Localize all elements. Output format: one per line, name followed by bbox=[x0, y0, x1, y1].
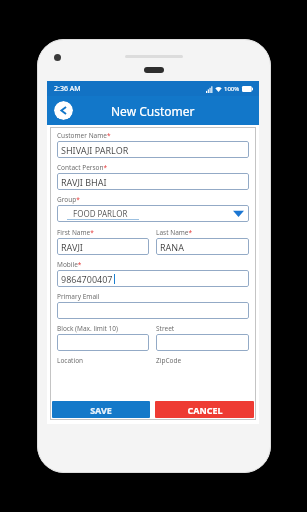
button[interactable]: SHIVAJI PARLOR bbox=[57, 141, 249, 158]
staticText: Street bbox=[156, 324, 175, 333]
staticText: 2:36 AM bbox=[54, 84, 81, 94]
staticText: ZipCode bbox=[156, 356, 182, 365]
button[interactable]: 9864700407 bbox=[57, 270, 249, 287]
staticText: 100% bbox=[224, 85, 240, 93]
staticText: Last Name* bbox=[156, 228, 193, 237]
staticText: FOOD PARLOR bbox=[73, 208, 128, 219]
staticText: CANCEL bbox=[187, 404, 223, 416]
button[interactable]: RAVJI bbox=[57, 238, 149, 255]
staticText: Mobile* bbox=[57, 260, 82, 269]
button[interactable]: FOOD PARLOR bbox=[57, 205, 249, 222]
staticText: RAVJI bbox=[61, 241, 83, 253]
button[interactable]: Back bbox=[54, 101, 73, 120]
button[interactable] bbox=[156, 334, 249, 351]
staticText: SHIVAJI PARLOR bbox=[61, 144, 129, 156]
staticText: Group* bbox=[57, 195, 80, 204]
staticText: Contact Person* bbox=[57, 163, 108, 172]
staticText: New Customer bbox=[111, 103, 195, 119]
staticText: First Name* bbox=[57, 228, 94, 237]
staticText: RANA bbox=[160, 241, 184, 253]
button[interactable]: RAVJI BHAI bbox=[57, 173, 249, 190]
button[interactable] bbox=[57, 334, 149, 351]
button[interactable]: SAVE bbox=[52, 401, 150, 418]
button[interactable]: RANA bbox=[156, 238, 249, 255]
staticText: Primary Email bbox=[57, 292, 100, 301]
staticText: RAVJI BHAI bbox=[61, 176, 107, 188]
button[interactable]: CANCEL bbox=[155, 401, 254, 418]
staticText: Location bbox=[57, 356, 84, 365]
staticText: 9864700407 bbox=[61, 273, 113, 285]
staticText: Block (Max. limit 10) bbox=[57, 324, 119, 333]
button[interactable] bbox=[57, 302, 249, 319]
staticText: SAVE bbox=[90, 404, 112, 416]
staticText: Customer Name* bbox=[57, 131, 111, 140]
